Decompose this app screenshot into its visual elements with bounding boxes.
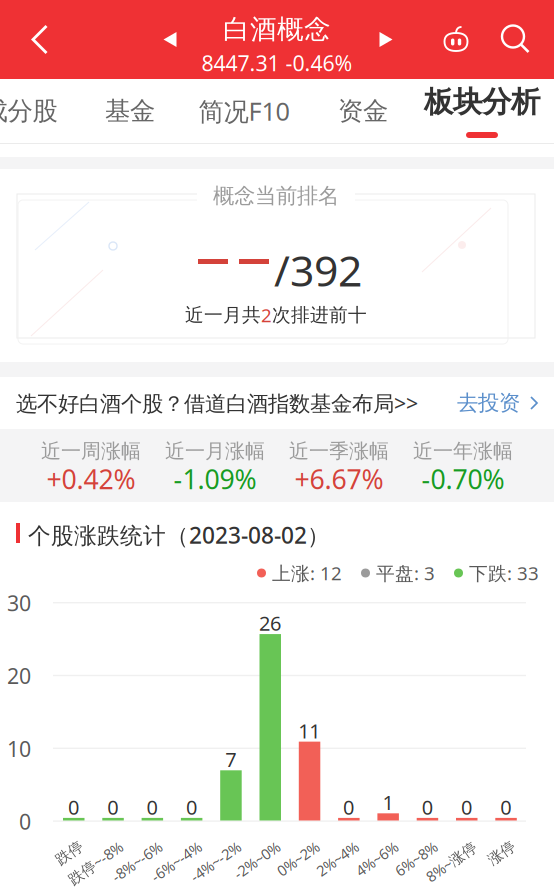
- staticText: -6%~-4%: [136, 837, 194, 856]
- staticText: 0: [500, 794, 511, 820]
- button[interactable]: AI assistant: [428, 0, 484, 79]
- staticText: 0: [147, 794, 158, 820]
- staticText: 跌停: [46, 837, 76, 855]
- button[interactable]: 简况F10: [185, 79, 303, 143]
- button[interactable]: Next concept: [362, 0, 410, 79]
- staticText: 成分股: [0, 95, 57, 126]
- staticText: 4%~6%: [343, 837, 391, 856]
- staticText: 0%~2%: [264, 837, 312, 856]
- staticText: 概念当前排名: [213, 183, 339, 209]
- staticText: 11: [298, 717, 320, 744]
- staticText: 0: [68, 794, 79, 820]
- staticText: 个股涨跌统计（2023-08-02）: [28, 520, 330, 550]
- staticText: 涨停: [479, 837, 509, 855]
- staticText: +0.42%: [46, 461, 135, 497]
- button[interactable]: 成分股: [0, 79, 68, 143]
- staticText: 基金: [105, 95, 155, 126]
- staticText: 20: [7, 662, 31, 690]
- staticText: +6.67%: [294, 461, 383, 497]
- staticText: 30: [7, 589, 31, 617]
- staticText: 0: [19, 807, 31, 835]
- staticText: 近一年涨幅: [413, 439, 513, 463]
- staticText: 简况F10: [198, 94, 289, 128]
- staticText: -2%~0%: [220, 837, 273, 856]
- staticText: 白酒概念: [223, 13, 331, 46]
- staticText: 1: [382, 789, 393, 816]
- staticText: 8%~涨停: [411, 837, 469, 856]
- button[interactable]: Back: [5, 0, 75, 79]
- staticText: 7: [225, 746, 236, 773]
- staticText: 0: [461, 794, 472, 820]
- staticText: 8447.31 -0.46%: [201, 49, 352, 77]
- button[interactable]: Previous concept: [146, 0, 194, 79]
- staticText: 平盘: 3: [376, 561, 435, 585]
- staticText: 0: [422, 794, 433, 820]
- staticText: 10: [7, 734, 31, 763]
- staticText: 0: [107, 794, 118, 820]
- button[interactable]: 基金: [85, 79, 175, 143]
- staticText: 近一月涨幅: [165, 439, 265, 463]
- staticText: -1.09%: [173, 461, 256, 497]
- staticText: -4%~-2%: [176, 837, 234, 856]
- staticText: 近一月共: [185, 303, 261, 326]
- staticText: 26: [259, 610, 281, 636]
- staticText: -0.70%: [421, 461, 504, 497]
- staticText: 近一周涨幅: [41, 439, 141, 463]
- staticText: 资金: [338, 95, 388, 126]
- staticText: 次排进前十: [272, 303, 367, 326]
- staticText: 0: [343, 794, 354, 820]
- staticText: 6%~8%: [382, 837, 430, 856]
- staticText: 近一季涨幅: [289, 439, 389, 463]
- button[interactable]: 资金: [318, 79, 408, 143]
- button[interactable]: 板块分析: [419, 79, 545, 143]
- staticText: /392: [274, 242, 362, 298]
- staticText: 跌停~-8%: [53, 837, 116, 856]
- staticText: 0: [186, 794, 197, 820]
- button[interactable]: 选不好白酒个股？借道白酒指数基金布局>>: [0, 377, 554, 429]
- staticText: 2%~4%: [304, 837, 352, 856]
- staticText: -8%~-6%: [97, 837, 155, 856]
- staticText: 2: [261, 303, 272, 327]
- staticText: 选不好白酒个股？借道白酒指数基金布局>>: [16, 389, 418, 417]
- staticText: 去投资: [457, 390, 520, 416]
- staticText: 上涨: 12: [272, 561, 342, 585]
- button[interactable]: Search: [487, 0, 545, 79]
- staticText: 板块分析: [424, 84, 540, 120]
- staticText: 下跌: 33: [469, 561, 539, 585]
